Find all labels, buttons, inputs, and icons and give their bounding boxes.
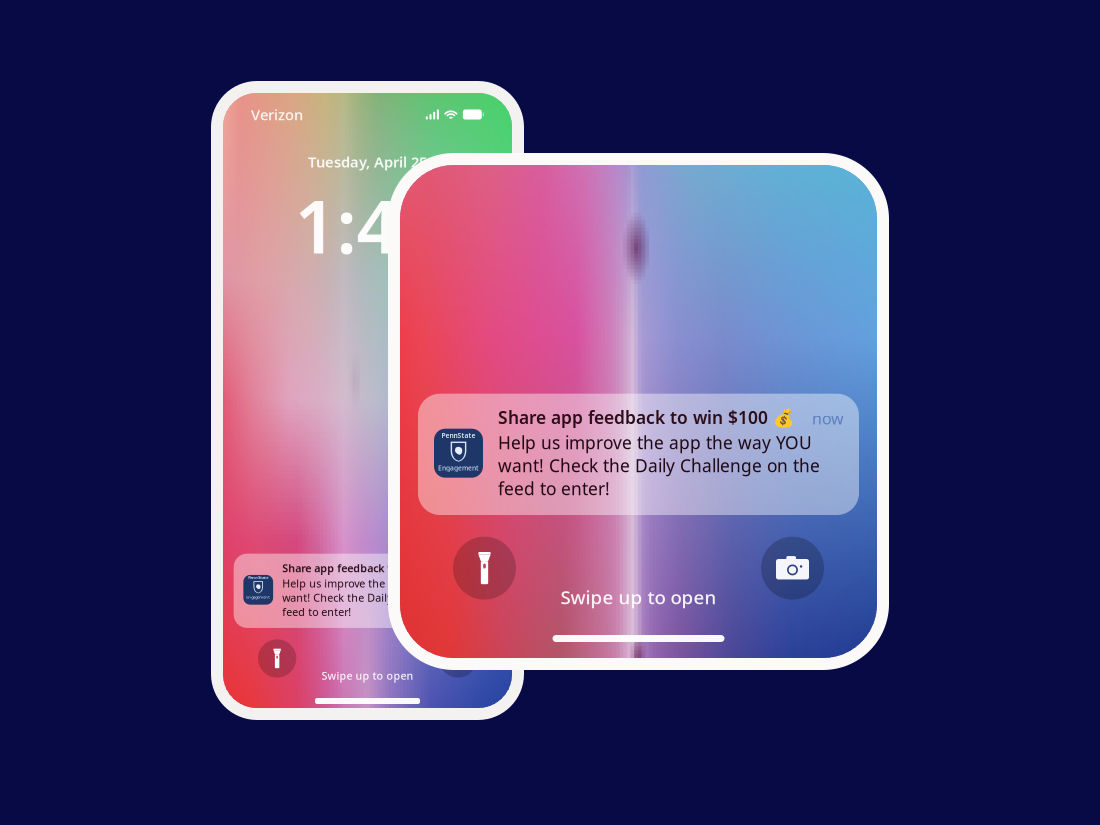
staticText: Engagement — [438, 463, 479, 472]
staticText: Verizon — [251, 105, 303, 124]
staticText: Help us improve the app the way YOU want… — [282, 576, 483, 619]
button[interactable]: PennState — [229, 554, 506, 628]
button[interactable]: Flashlight — [453, 537, 516, 600]
staticText: 1:47 — [294, 176, 440, 274]
staticText: Swipe up to open — [321, 668, 413, 683]
staticText: Help us improve the app the way YOU want… — [498, 431, 820, 500]
button[interactable]: PennState — [410, 394, 867, 515]
staticText: Swipe up to open — [560, 585, 716, 609]
staticText: now — [812, 408, 844, 429]
button[interactable]: Camera — [761, 537, 824, 600]
staticText: Share app feedback to win $100 💰 — [498, 406, 795, 429]
staticText: PennState — [248, 575, 268, 580]
staticText: Share app feedback to win $100 💰 — [282, 561, 463, 575]
button[interactable]: Camera — [439, 639, 477, 677]
button[interactable]: Flashlight — [258, 639, 296, 677]
staticText: Tuesday, April 25 — [308, 152, 427, 171]
staticText: Engagement — [246, 594, 270, 600]
staticText: PennState — [441, 431, 475, 440]
staticText: now — [474, 562, 492, 575]
